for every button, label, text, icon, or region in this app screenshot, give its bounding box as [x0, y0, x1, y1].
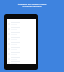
button[interactable]	[7, 26, 36, 31]
button[interactable]	[7, 31, 36, 36]
staticText: Material list screen inside a phone mock…	[4, 2, 60, 8]
button[interactable]	[7, 41, 36, 46]
button[interactable]	[7, 61, 36, 64]
button[interactable]	[7, 36, 36, 41]
button[interactable]	[7, 46, 36, 51]
button[interactable]	[7, 21, 36, 26]
button[interactable]	[7, 51, 36, 56]
button[interactable]	[7, 56, 36, 61]
